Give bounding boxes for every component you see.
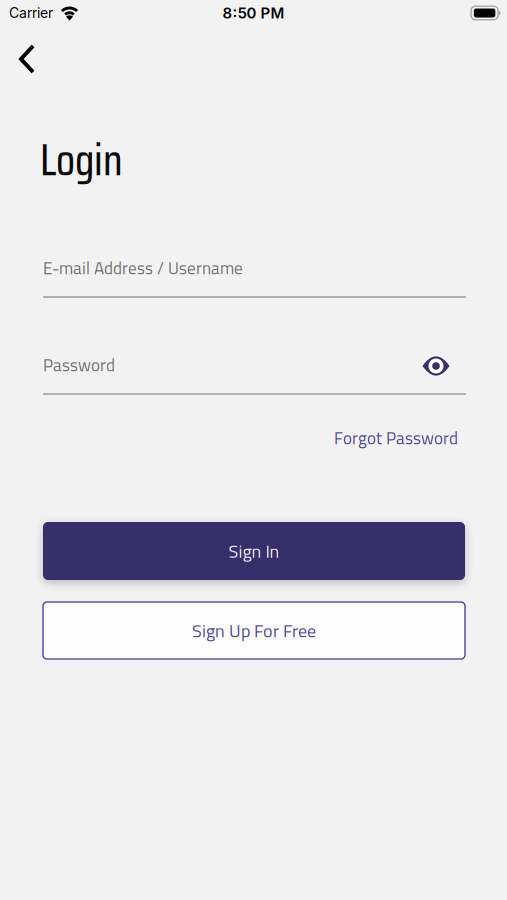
staticText: Forgot Password: [334, 425, 458, 451]
staticText: Sign Up For Free: [192, 617, 316, 644]
staticText: E-mail Address / Username: [43, 255, 243, 281]
staticText: Password: [43, 352, 115, 378]
button[interactable]: Forgot Password: [334, 425, 458, 451]
button[interactable]: Back: [6, 37, 50, 81]
staticText: Carrier: [9, 4, 53, 21]
staticText: Login: [40, 126, 123, 194]
button[interactable]: Sign In: [43, 522, 465, 580]
staticText: Sign In: [228, 537, 279, 565]
button[interactable]: Show Password: [416, 348, 456, 384]
staticText: 8:50 PM: [222, 4, 284, 22]
button[interactable]: Sign Up For Free: [43, 602, 465, 659]
